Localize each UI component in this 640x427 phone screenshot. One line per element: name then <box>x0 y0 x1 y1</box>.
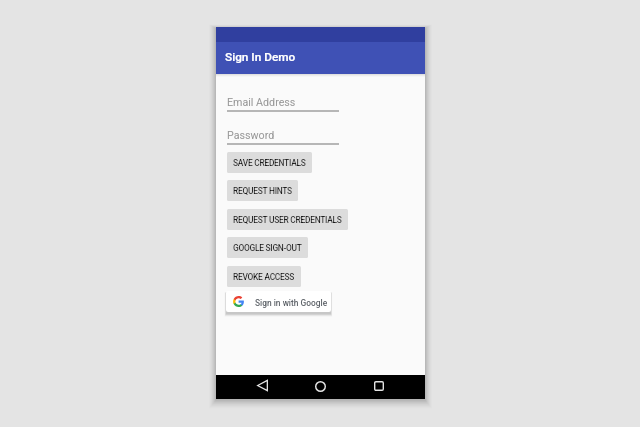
button[interactable]: GOOGLE SIGN-OUT <box>227 237 308 258</box>
staticText: Email Address <box>227 96 296 109</box>
staticText: REVOKE ACCESS <box>233 272 295 282</box>
button[interactable]: REQUEST USER CREDENTIALS <box>227 209 348 230</box>
staticText: SAVE CREDENTIALS <box>233 158 306 168</box>
button[interactable]: Back <box>252 375 272 395</box>
button[interactable]: Password <box>227 123 339 143</box>
staticText: REQUEST USER CREDENTIALS <box>233 215 342 225</box>
button[interactable]: Sign in with Google <box>226 291 331 312</box>
button[interactable]: Home <box>310 376 330 396</box>
staticText: Password <box>227 129 275 142</box>
staticText: GOOGLE SIGN-OUT <box>233 243 302 253</box>
staticText: REQUEST HINTS <box>233 186 292 196</box>
button[interactable]: REVOKE ACCESS <box>227 266 301 287</box>
staticText: Sign In Demo <box>225 50 296 64</box>
button[interactable]: SAVE CREDENTIALS <box>227 152 312 173</box>
staticText: Sign in with Google <box>255 298 328 308</box>
button[interactable]: Recent apps <box>369 376 389 396</box>
button[interactable]: Email Address <box>227 90 339 110</box>
button[interactable]: REQUEST HINTS <box>227 180 298 201</box>
